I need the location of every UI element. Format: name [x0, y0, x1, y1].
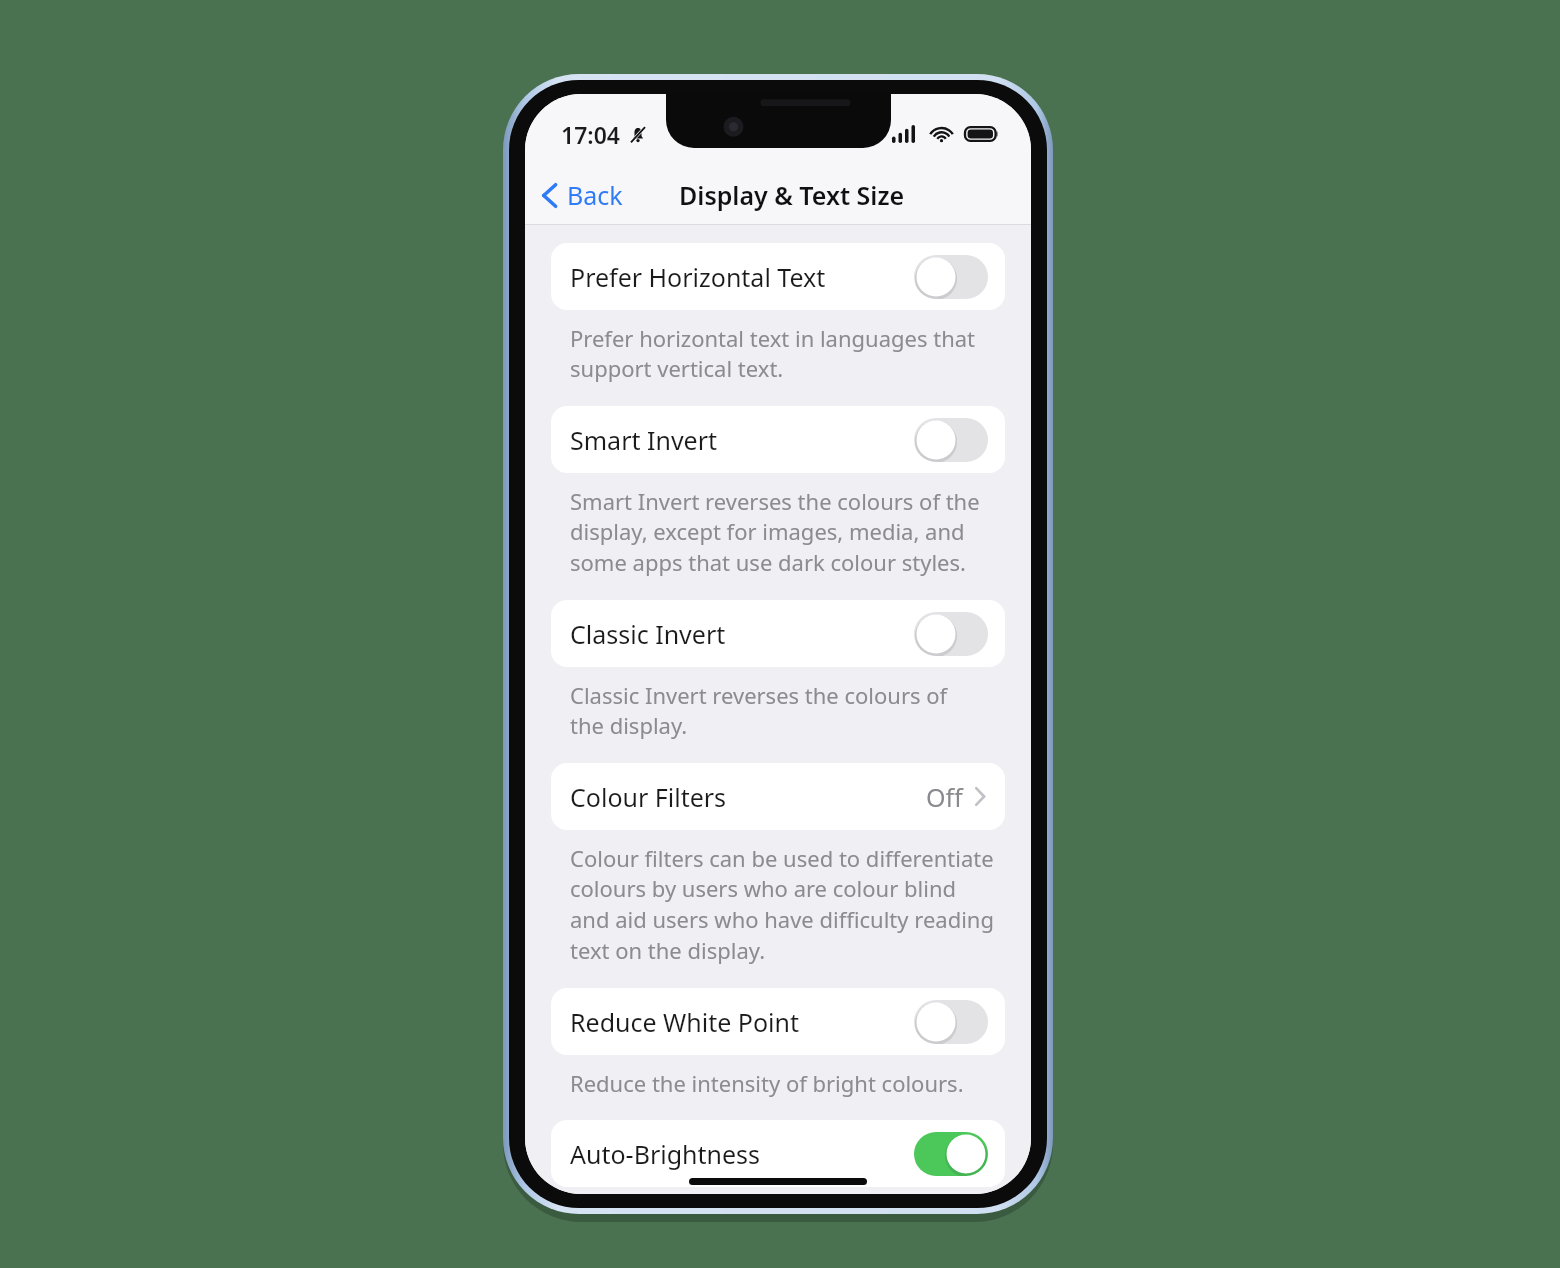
staticText: Display & Text Size — [679, 178, 905, 212]
staticText: Auto-Brightness — [570, 1137, 761, 1171]
staticText: Off — [926, 780, 963, 814]
staticText: Prefer Horizontal Text — [570, 260, 826, 294]
button[interactable]: Off — [914, 612, 988, 656]
staticText: Reduce White Point — [570, 1005, 800, 1039]
staticText: Classic Invert — [570, 617, 726, 651]
staticText: Reduce the intensity of bright colours. — [570, 1068, 964, 1098]
staticText: Prefer horizontal text in languages that… — [570, 323, 997, 384]
button[interactable]: Reduce White Point — [551, 988, 1005, 1055]
staticText: Smart Invert — [570, 423, 718, 457]
button[interactable]: Back — [525, 172, 635, 218]
staticText: Colour filters can be used to differenti… — [570, 843, 997, 966]
staticText: Smart Invert reverses the colours of the… — [570, 486, 997, 578]
button[interactable]: Auto-Brightness — [551, 1120, 1005, 1187]
button[interactable]: Off — [914, 418, 988, 462]
button[interactable]: Classic Invert — [551, 600, 1005, 667]
button[interactable]: On — [914, 1132, 988, 1176]
staticText: Colour Filters — [570, 780, 727, 814]
staticText: Back — [567, 178, 623, 212]
staticText: 17:04 — [561, 119, 620, 150]
button[interactable]: Colour Filters — [551, 763, 1005, 830]
staticText: Classic Invert reverses the colours of t… — [570, 680, 948, 741]
button[interactable]: Off — [914, 1000, 988, 1044]
button[interactable]: Prefer Horizontal Text — [551, 243, 1005, 310]
button[interactable]: Smart Invert — [551, 406, 1005, 473]
button[interactable]: Off — [914, 255, 988, 299]
